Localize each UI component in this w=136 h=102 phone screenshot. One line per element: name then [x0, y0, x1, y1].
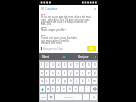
- staticText: Theo: [41, 26, 47, 29]
- button[interactable]: 7: [74, 62, 79, 68]
- button[interactable]: l: [86, 78, 91, 84]
- staticText: Zoe: [41, 34, 46, 37]
- staticText: f: [58, 79, 59, 83]
- staticText: .: [86, 95, 87, 99]
- staticText: Et tu ne veux pas de moi, alors de moi r…: [41, 15, 93, 26]
- button[interactable]: ,: [79, 86, 84, 92]
- staticText: r: [58, 71, 60, 75]
- staticText: y: [70, 71, 72, 75]
- button[interactable]: Space: [55, 94, 82, 100]
- staticText: Merci: [42, 55, 50, 59]
- staticText: a: [41, 71, 43, 75]
- staticText: 3: [52, 63, 54, 67]
- staticText: ›: [95, 55, 96, 59]
- staticText: Zoe: [41, 13, 46, 16]
- staticText: e: [52, 71, 54, 75]
- button[interactable]: u: [74, 70, 79, 76]
- button[interactable]: x: [51, 86, 55, 92]
- button[interactable]: 0: [92, 62, 97, 68]
- staticText: d: [52, 79, 54, 83]
- staticText: m: [93, 79, 96, 83]
- button[interactable]: t: [62, 70, 67, 76]
- staticText: Envoyer un Chat: [43, 47, 63, 51]
- staticText: Bonjour: [78, 55, 89, 59]
- button[interactable]: b: [67, 86, 72, 92]
- button[interactable]: 5: [62, 62, 67, 68]
- button[interactable]: Send: [87, 46, 96, 51]
- staticText: 2: [46, 63, 48, 67]
- staticText: z: [46, 71, 48, 75]
- button[interactable]: n: [73, 86, 78, 92]
- staticText: t: [64, 71, 66, 75]
- staticText: ?123: [41, 96, 46, 99]
- button[interactable]: 2: [45, 62, 49, 68]
- button[interactable]: 3: [50, 62, 55, 68]
- staticText: c: [57, 87, 59, 91]
- button[interactable]: 9: [86, 62, 91, 68]
- staticText: 0: [94, 63, 96, 67]
- staticText: o: [88, 71, 90, 75]
- staticText: Nom maps profile !: [41, 28, 93, 32]
- staticText: g: [64, 79, 66, 83]
- button[interactable]: z: [45, 70, 49, 76]
- staticText: 7: [76, 63, 78, 67]
- button[interactable]: v: [61, 86, 66, 92]
- button[interactable]: Enter: [90, 94, 97, 100]
- button[interactable]: ?123: [40, 94, 47, 100]
- button[interactable]: k: [80, 78, 85, 84]
- button[interactable]: j: [74, 78, 79, 84]
- button[interactable]: m: [92, 78, 97, 84]
- button[interactable]: .: [83, 94, 89, 100]
- button[interactable]: e: [50, 70, 55, 76]
- button[interactable]: g: [62, 78, 67, 84]
- staticText: j: [76, 79, 77, 83]
- staticText: u: [76, 71, 78, 75]
- staticText: b: [69, 87, 71, 91]
- button[interactable]: d: [50, 78, 55, 84]
- button[interactable]: a: [40, 70, 44, 76]
- staticText: i: [82, 71, 83, 75]
- staticText: q: [41, 79, 43, 83]
- staticText: 5: [64, 63, 66, 67]
- button[interactable]: y: [68, 70, 73, 76]
- button[interactable]: 6: [68, 62, 73, 68]
- staticText: s: [46, 79, 48, 83]
- staticText: x: [52, 87, 54, 91]
- staticText: h: [70, 79, 72, 83]
- button[interactable]: 4: [56, 62, 61, 68]
- button[interactable]: q: [40, 78, 44, 84]
- staticText: n: [75, 87, 77, 91]
- staticText: k: [82, 79, 84, 83]
- button[interactable]: w: [46, 86, 50, 92]
- staticText: l: [88, 79, 89, 83]
- button[interactable]: i: [80, 70, 85, 76]
- staticText: 4: [58, 63, 60, 67]
- staticText: Francais: [64, 96, 73, 99]
- staticText: Caudna: [45, 6, 58, 11]
- staticText: 9: [88, 63, 90, 67]
- button[interactable]: p: [92, 70, 97, 76]
- button[interactable]: Conversation icon: [39, 5, 98, 12]
- button[interactable]: Shift: [40, 86, 45, 92]
- staticText: 6: [70, 63, 72, 67]
- button[interactable]: 1: [40, 62, 44, 68]
- staticText: 8: [82, 63, 84, 67]
- button[interactable]: h: [68, 78, 73, 84]
- button[interactable]: 8: [80, 62, 85, 68]
- button[interactable]: s: [45, 78, 49, 84]
- staticText: ': [87, 87, 88, 91]
- button[interactable]: r: [56, 70, 61, 76]
- button[interactable]: f: [56, 78, 61, 84]
- staticText: w: [47, 87, 50, 91]
- button[interactable]: Emoji: [48, 94, 54, 100]
- staticText: p: [94, 71, 96, 75]
- button[interactable]: Backspace: [91, 86, 97, 92]
- staticText: 1: [41, 63, 43, 67]
- button[interactable]: o: [86, 70, 91, 76]
- button[interactable]: ': [85, 86, 90, 92]
- button[interactable]: c: [56, 86, 60, 92]
- staticText: ,: [81, 87, 82, 91]
- staticText: v: [63, 87, 65, 91]
